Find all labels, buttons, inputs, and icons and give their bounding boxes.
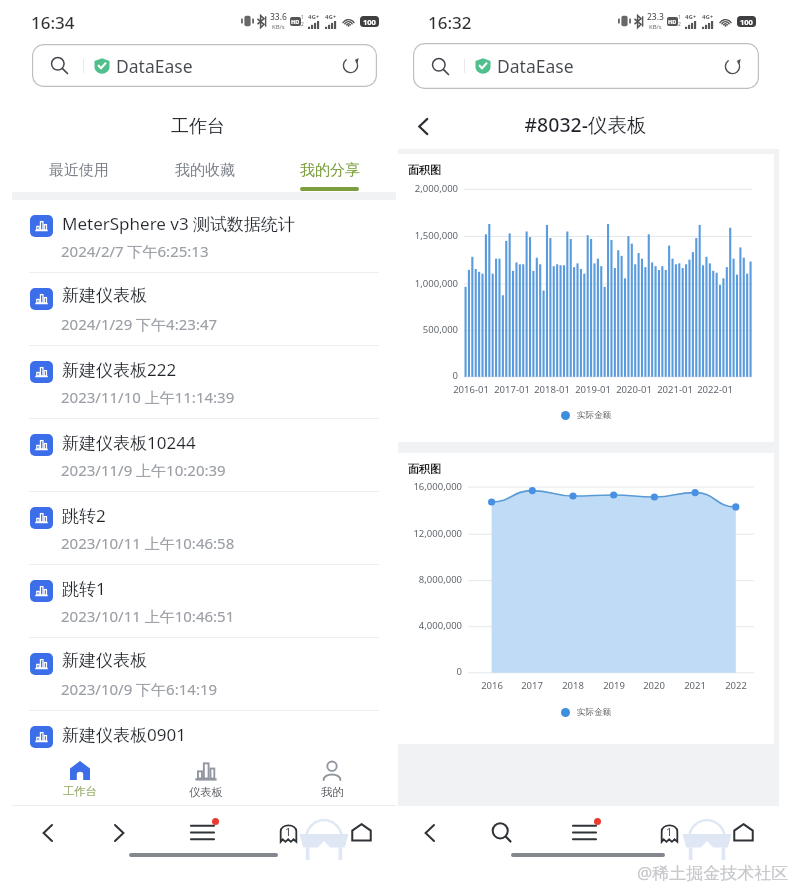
staticText: 12,000,000 <box>398 527 462 540</box>
button[interactable]: 最近使用 <box>16 161 142 191</box>
button[interactable]: 新建仪表板10244 <box>0 419 396 492</box>
button[interactable]: 跳转2 <box>0 492 396 565</box>
button[interactable]: 新建仪表板0901 <box>0 711 396 749</box>
button[interactable]: Recents <box>262 806 314 859</box>
staticText: 2023/11/9 上午10:20:39 <box>61 460 226 480</box>
other: Refresh <box>342 57 359 74</box>
button[interactable]: 我的 <box>269 749 395 805</box>
staticText: 新建仪表板 <box>62 285 147 306</box>
button[interactable]: Home <box>717 806 769 859</box>
staticText: 16,000,000 <box>398 480 462 493</box>
staticText: 仪表板 <box>189 785 223 799</box>
staticText: 实际金额 <box>577 410 612 421</box>
staticText: 2021-01 <box>645 383 705 396</box>
staticText: 2 <box>678 21 681 28</box>
staticText: 2023/10/9 下午6:14:19 <box>61 679 218 699</box>
staticText: 500,000 <box>394 323 458 336</box>
staticText: 我的分享 <box>300 161 360 180</box>
button[interactable]: Back <box>404 806 456 859</box>
staticText: DataEase <box>116 54 193 78</box>
staticText: 1 <box>678 14 681 21</box>
staticText: 2016 <box>462 679 522 692</box>
staticText: 面积图 <box>408 462 441 476</box>
staticText: 2 <box>301 21 304 28</box>
staticText: 2017-01 <box>482 383 542 396</box>
staticText: 2024/2/7 下午6:25:13 <box>61 241 209 261</box>
staticText: 新建仪表板0901 <box>62 723 186 746</box>
staticText: 新建仪表板 <box>62 650 147 671</box>
staticText: 4G+ <box>325 13 337 21</box>
button[interactable]: Home <box>335 806 387 859</box>
button[interactable]: MeterSphere v3 测试数据统计 <box>0 200 396 273</box>
staticText: 2017 <box>502 679 562 692</box>
staticText: 2020-01 <box>604 383 664 396</box>
staticText: MeterSphere v3 测试数据统计 <box>62 212 296 235</box>
staticText: @稀土掘金技术社区 <box>637 861 789 884</box>
button[interactable]: Back <box>22 806 74 859</box>
button[interactable]: 我的分享 <box>267 161 392 191</box>
staticText: 4G+ <box>702 13 714 21</box>
staticText: DataEase <box>497 54 574 78</box>
staticText: #8032-仪表板 <box>395 111 776 138</box>
button[interactable]: 新建仪表板222 <box>0 346 396 419</box>
staticText: 8,000,000 <box>398 573 462 586</box>
staticText: 100 <box>363 17 376 27</box>
button[interactable]: Forward <box>93 806 145 859</box>
button[interactable]: 我的收藏 <box>142 161 267 191</box>
button[interactable]: 仪表板 <box>143 749 269 805</box>
button[interactable]: DataEase <box>413 43 759 89</box>
staticText: 1,000,000 <box>394 277 458 290</box>
staticText: 4,000,000 <box>398 619 462 632</box>
staticText: 最近使用 <box>49 161 109 180</box>
button[interactable]: Menu <box>558 806 610 859</box>
staticText: 实际金额 <box>577 707 612 718</box>
staticText: 0 <box>394 369 458 382</box>
staticText: 1 <box>666 824 673 839</box>
staticText: 我的 <box>321 785 344 799</box>
staticText: 跳转2 <box>62 504 106 527</box>
button[interactable]: 新建仪表板 <box>0 273 396 346</box>
staticText: 我的收藏 <box>175 161 235 180</box>
button[interactable]: 新建仪表板 <box>0 638 396 711</box>
staticText: 新建仪表板10244 <box>62 431 196 454</box>
staticText: 1 <box>285 824 292 839</box>
button[interactable]: Menu <box>176 806 228 859</box>
staticText: 4G+ <box>685 13 697 21</box>
staticText: 1 <box>301 14 304 21</box>
button[interactable]: Recents <box>643 806 695 859</box>
staticText: 33.6 <box>270 11 287 23</box>
staticText: 2019-01 <box>563 383 623 396</box>
staticText: 2018-01 <box>522 383 582 396</box>
staticText: 2023/11/10 上午11:14:39 <box>61 387 235 407</box>
staticText: 新建仪表板222 <box>62 358 177 381</box>
staticText: 2023/10/11 上午10:46:58 <box>61 533 235 553</box>
staticText: 2,000,000 <box>394 182 458 195</box>
staticText: 工作台 <box>0 115 396 138</box>
staticText: 2020 <box>624 679 684 692</box>
staticText: 2024/1/29 下午4:23:47 <box>61 314 218 334</box>
staticText: 跳转1 <box>62 577 106 600</box>
staticText: 工作台 <box>63 784 97 798</box>
staticText: 100 <box>740 17 753 27</box>
staticText: 2022-01 <box>685 383 745 396</box>
staticText: 0 <box>398 665 462 678</box>
staticText: 4G+ <box>308 13 320 21</box>
other: Refresh <box>724 58 741 75</box>
button[interactable]: Search <box>475 806 527 859</box>
button[interactable]: Back <box>407 110 439 142</box>
staticText: KB/s <box>272 23 285 31</box>
staticText: 面积图 <box>408 163 441 177</box>
staticText: 2023/10/11 上午10:46:51 <box>61 606 235 626</box>
staticText: HD <box>668 18 677 25</box>
staticText: 23.3 <box>647 11 664 23</box>
staticText: 16:34 <box>31 11 75 34</box>
staticText: KB/s <box>649 23 662 31</box>
button[interactable]: 跳转1 <box>0 565 396 638</box>
staticText: 2019 <box>584 679 644 692</box>
button[interactable]: DataEase <box>32 44 377 87</box>
staticText: 2021 <box>665 679 725 692</box>
staticText: HD <box>291 18 300 25</box>
staticText: 1,500,000 <box>394 229 458 242</box>
button[interactable]: 工作台 <box>17 749 143 805</box>
staticText: 2018 <box>543 679 603 692</box>
